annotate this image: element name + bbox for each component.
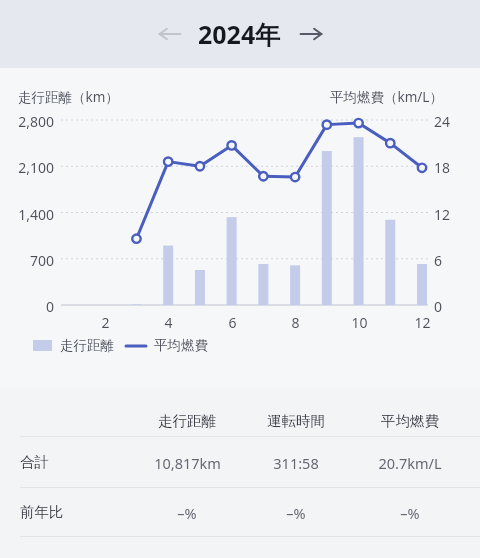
staticText: 10 [351,313,368,332]
staticText: 10,817km [154,453,221,473]
button[interactable]: 合計 [0,436,480,487]
staticText: –% [286,503,306,523]
button[interactable]: 前年比 [0,487,480,536]
staticText: 2,800 [18,112,54,131]
staticText: 走行距離 [158,412,216,430]
staticText: 平均燃費 [154,337,208,354]
staticText: 18 [434,158,451,177]
staticText: 1,400 [18,205,54,224]
staticText: –% [177,503,197,523]
staticText: 20.7km/L [378,453,442,473]
staticText: 2024年 [198,17,281,51]
staticText: –% [400,503,420,523]
staticText: 8 [291,313,300,332]
staticText: 700 [29,251,54,270]
staticText: 平均燃費（km/L） [330,88,443,106]
staticText: 2 [101,313,110,332]
staticText: 0 [45,297,54,316]
staticText: 4 [164,313,173,332]
staticText: 12 [414,313,431,332]
button[interactable]: 前の年 [148,12,192,56]
staticText: 0 [434,297,443,316]
staticText: 6 [228,313,237,332]
staticText: 合計 [20,453,49,471]
staticText: 12 [434,205,451,224]
staticText: 24 [434,112,451,131]
staticText: 311:58 [273,453,319,473]
staticText: 走行距離 [60,337,114,354]
staticText: 前年比 [20,503,64,521]
staticText: 平均燃費 [381,412,439,430]
staticText: 6 [434,251,443,270]
staticText: 2,100 [18,158,54,177]
staticText: 走行距離（km） [18,88,119,106]
staticText: 運転時間 [267,412,325,430]
button[interactable]: 次の年 [289,12,333,56]
